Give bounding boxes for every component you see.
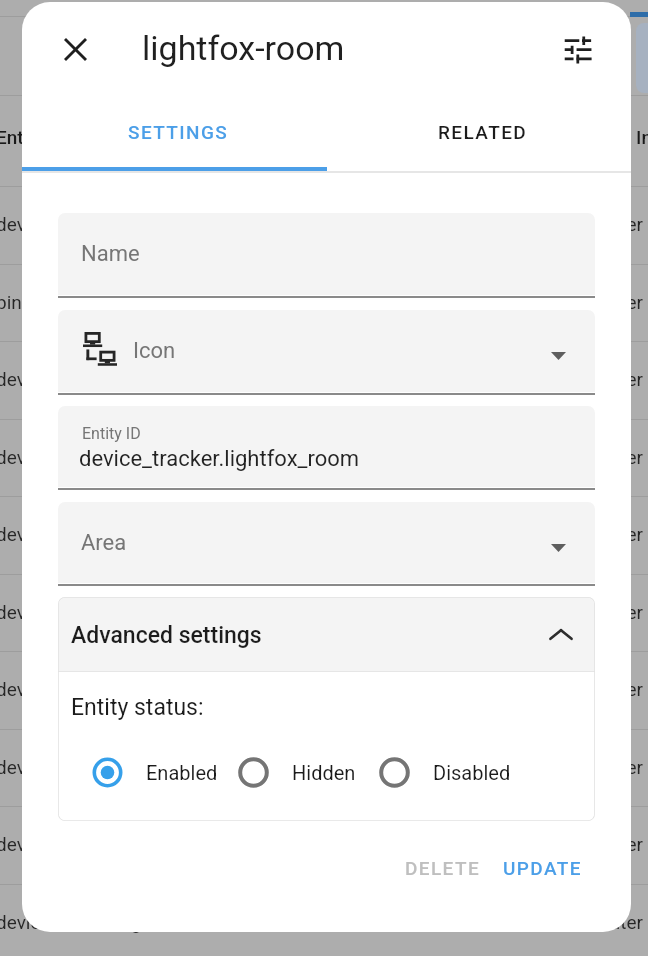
staticText: RELATED [438, 121, 528, 143]
staticText: Entity ID [82, 424, 141, 443]
staticText: device_tracker.lenovo_tab [0, 678, 214, 700]
staticText: Area [81, 530, 127, 556]
button[interactable]: DELETE [390, 845, 496, 891]
staticText: device_tracker.ipad_air [0, 523, 188, 545]
staticText: Advanced settings [71, 622, 262, 649]
staticText: Keenetic NDMS2 Router [440, 291, 643, 313]
staticText: device_tracker.redmi_note [0, 756, 217, 778]
staticText: Keenetic NDMS2 Router [440, 601, 643, 623]
staticText: Keenetic NDMS2 Router [440, 678, 643, 700]
staticText: Keenetic NDMS2 Router [440, 756, 643, 778]
staticText: Entity ID [0, 126, 67, 148]
button[interactable]: RELATED [330, 98, 631, 166]
staticText: Disabled [433, 761, 511, 784]
staticText: device_tracker.keenetic_hub [0, 601, 233, 623]
button[interactable]: Disabled [379, 757, 511, 788]
staticText: UPDATE [503, 857, 582, 879]
button[interactable]: Enabled [92, 757, 218, 788]
staticText: device_tracker.lightfox_room [79, 446, 360, 472]
staticText: Name [81, 241, 140, 267]
staticText: device_tracker.galaxy_s9 [0, 368, 205, 390]
button[interactable]: Hidden [238, 757, 356, 788]
button[interactable]: Advanced settings [58, 597, 595, 671]
staticText: Keenetic NDMS2 Router [440, 911, 643, 933]
staticText: device_tracker.lightfox_room [0, 213, 238, 235]
staticText: Keenetic NDMS2 Router [440, 523, 643, 545]
staticText: binary_sensor.router_connection [0, 291, 271, 313]
button[interactable]: Close [51, 25, 100, 74]
staticText: Hidden [292, 761, 356, 784]
button[interactable]: Filter settings [553, 25, 602, 74]
button[interactable]: Icon [58, 310, 595, 392]
staticText: Enabled [146, 761, 218, 784]
staticText: SETTINGS [128, 121, 229, 143]
staticText: Keenetic NDMS2 Router [440, 833, 643, 855]
staticText: device_tracker.xiaomi_mi9 [0, 833, 219, 855]
staticText: device_tracker.lightfox_room [0, 911, 238, 933]
staticText: Keenetic NDMS2 Router [440, 446, 643, 468]
staticText: Keenetic NDMS2 Router [440, 368, 643, 390]
button[interactable]: Entity ID [58, 406, 595, 487]
button[interactable]: UPDATE [487, 845, 598, 891]
staticText: device_tracker.honor_8x [0, 446, 200, 468]
button[interactable]: Name [58, 213, 595, 295]
button[interactable]: SETTINGS [26, 98, 330, 166]
staticText: Icon [133, 338, 176, 364]
button[interactable]: Area [58, 502, 595, 583]
staticText: lightfox-room [142, 28, 345, 68]
staticText: Entity status: [71, 694, 204, 721]
staticText: DELETE [405, 857, 481, 879]
staticText: Keenetic NDMS2 Router [440, 213, 643, 235]
staticText: Integration [636, 126, 648, 148]
